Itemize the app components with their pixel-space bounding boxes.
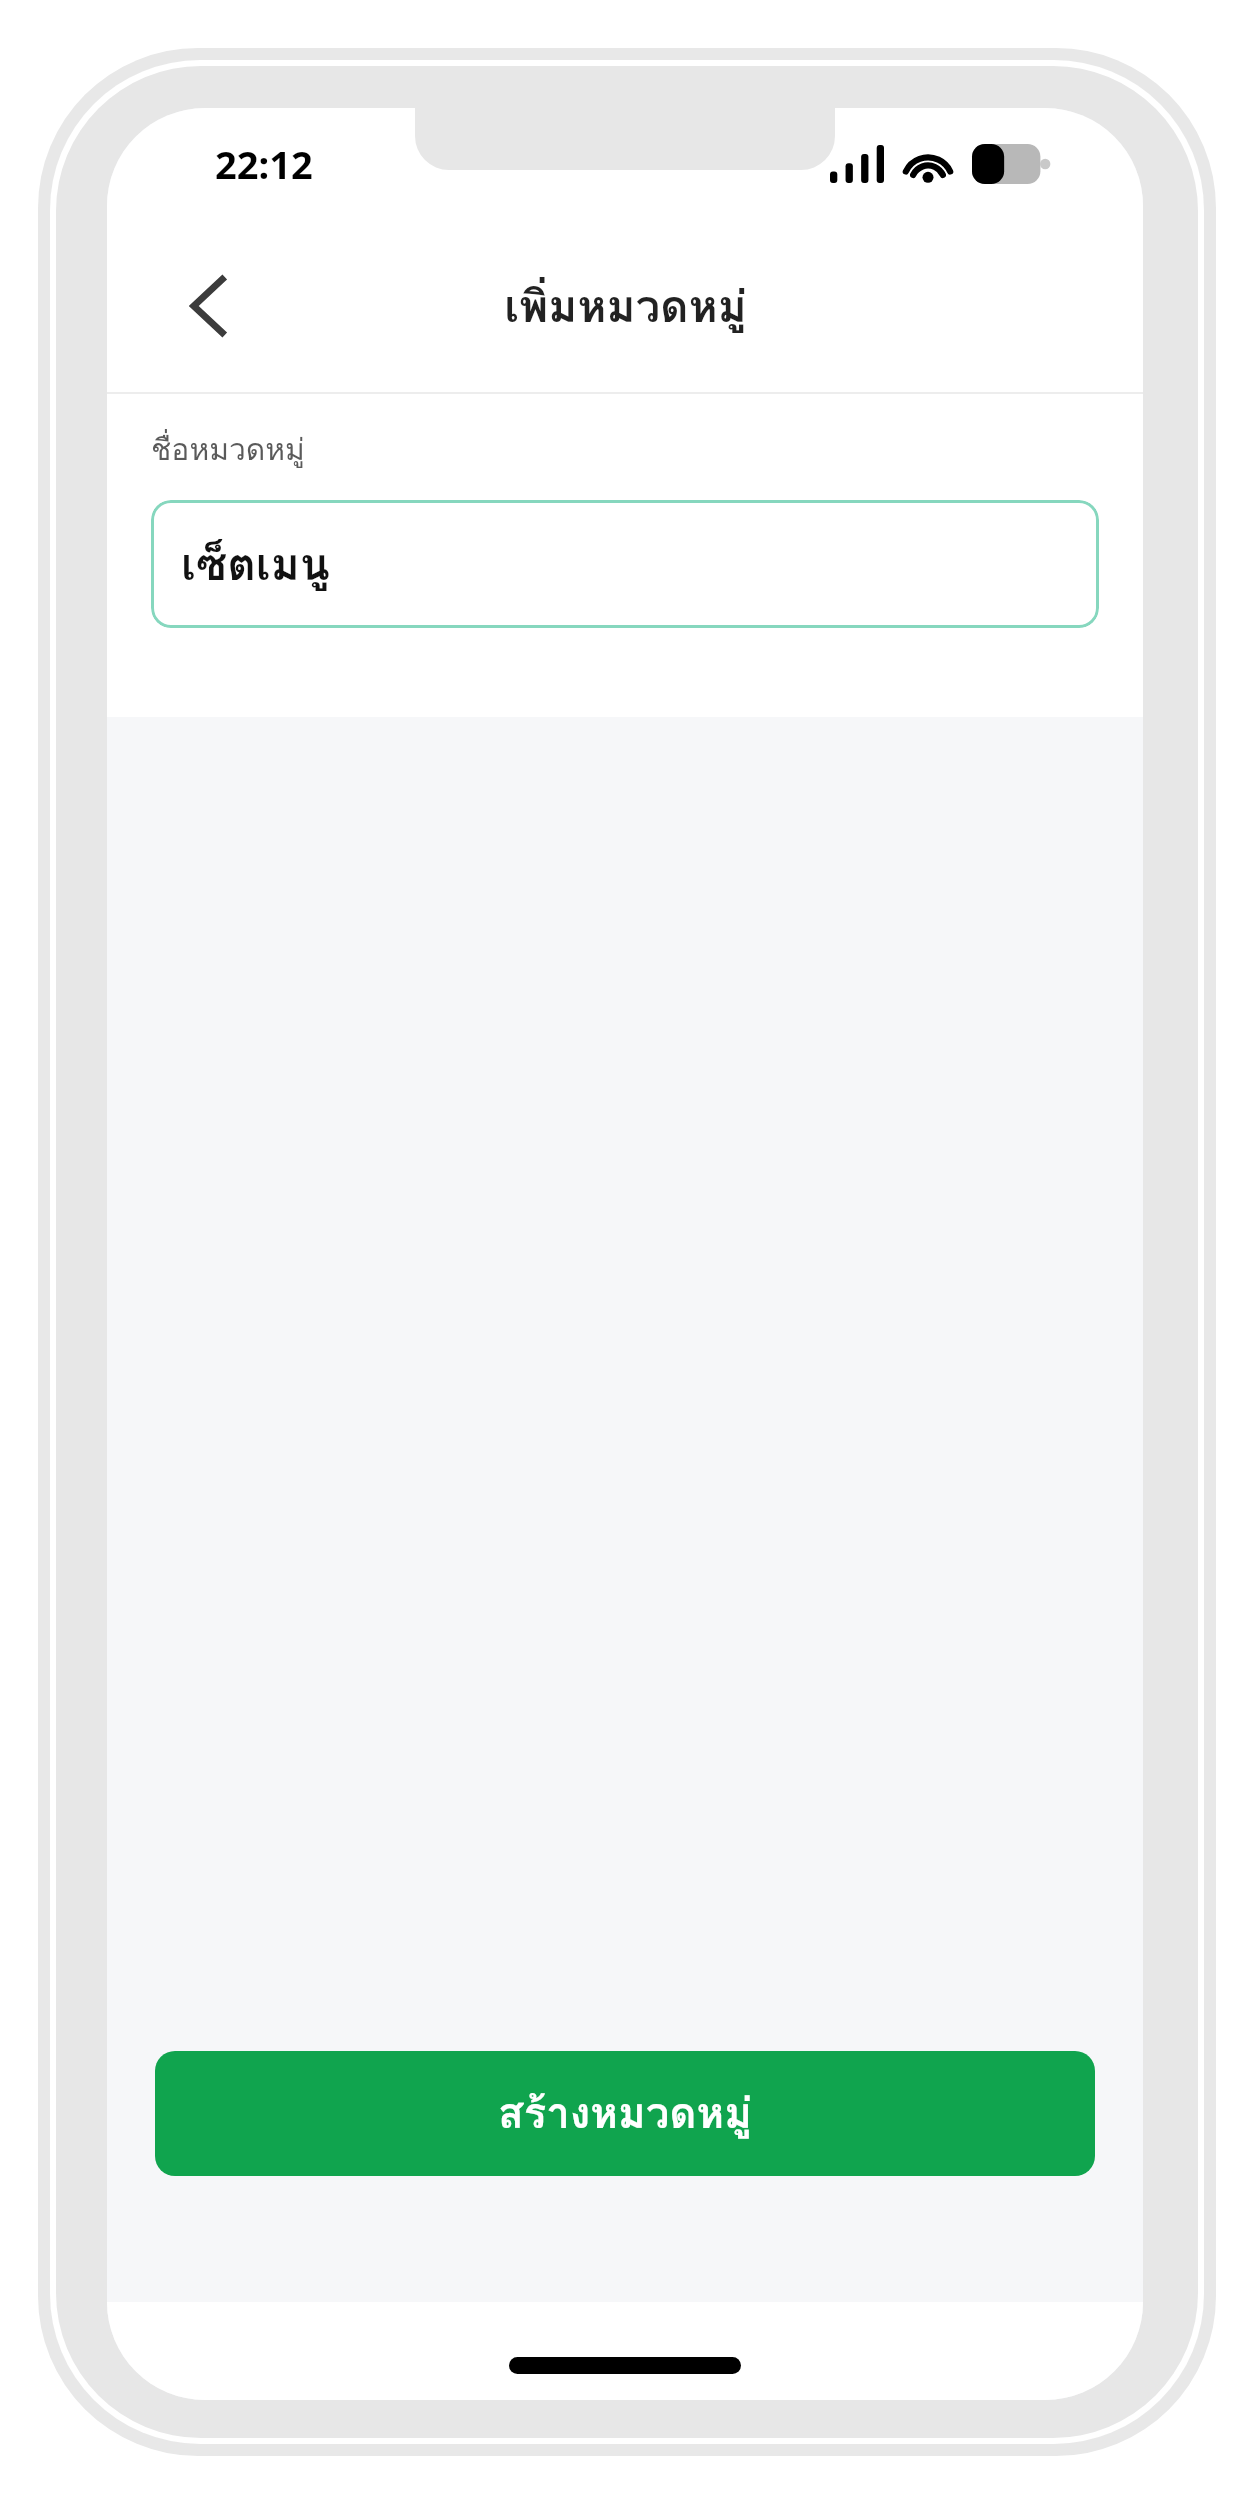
button[interactable]: สร้างหมวดหมู่ bbox=[155, 2051, 1095, 2176]
staticText: เซ็ตเมนู bbox=[181, 529, 330, 599]
button[interactable]: เซ็ตเมนู bbox=[151, 500, 1099, 628]
staticText: สร้างหมวดหมู่ bbox=[498, 2080, 752, 2147]
button[interactable]: Back bbox=[163, 261, 253, 351]
staticText: เพิ่มหมวดหมู่ bbox=[504, 271, 747, 341]
staticText: ชื่อหมวดหมู่ bbox=[151, 426, 305, 474]
staticText: 22:12 bbox=[215, 138, 313, 190]
